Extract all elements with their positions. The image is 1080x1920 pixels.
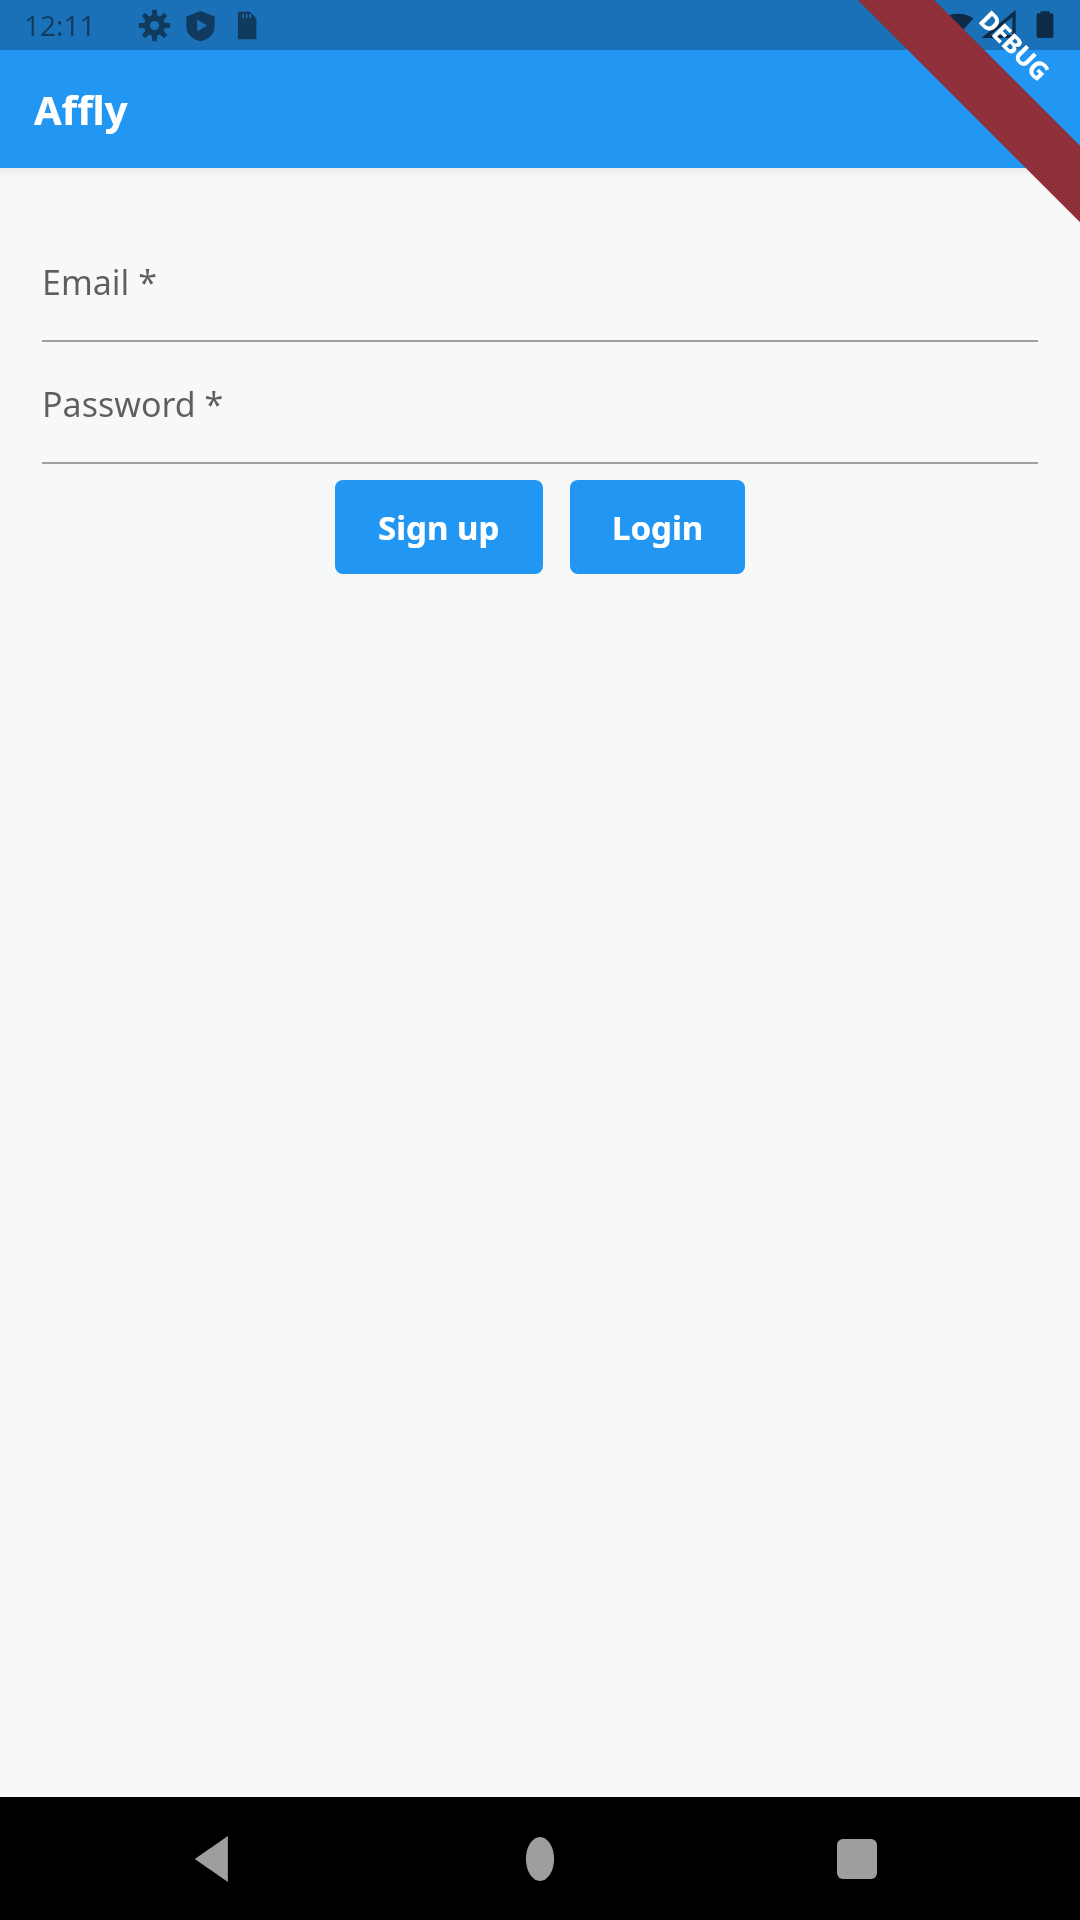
staticText: Email * xyxy=(42,259,157,305)
staticText: Sign up xyxy=(378,505,500,550)
staticText: DEBUG xyxy=(973,3,1057,87)
button[interactable]: Home xyxy=(485,1804,595,1914)
button[interactable]: Sign up xyxy=(335,480,543,574)
staticText: Affly xyxy=(34,82,128,136)
staticText: Password * xyxy=(42,381,224,427)
button[interactable]: Back xyxy=(160,1804,270,1914)
button[interactable]: Recent apps xyxy=(802,1804,912,1914)
staticText: Login xyxy=(612,505,704,550)
staticText: 12:11 xyxy=(24,6,96,44)
button[interactable]: Login xyxy=(570,480,745,574)
